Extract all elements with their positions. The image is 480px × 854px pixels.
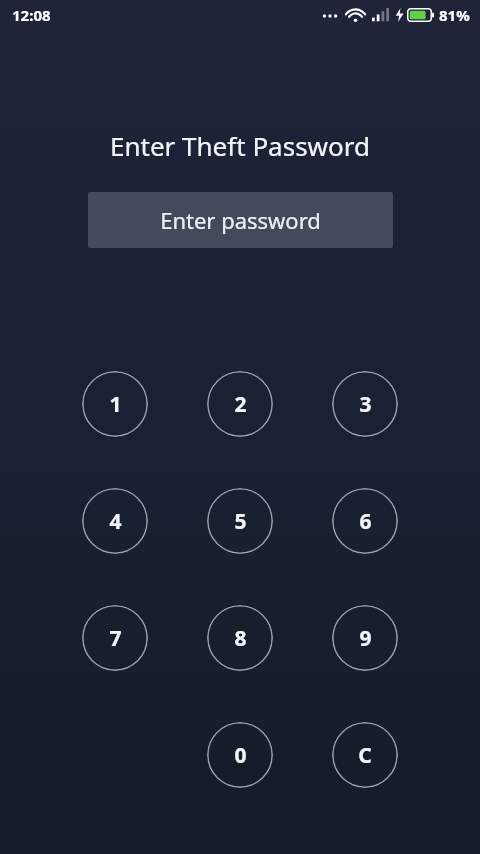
staticText: 4 [109,507,122,536]
staticText: 3 [359,390,372,419]
button[interactable]: Clear [332,722,398,788]
staticText: 0 [234,741,247,770]
staticText: 81% [439,5,470,25]
button[interactable]: Digit 6 [332,488,398,554]
button[interactable]: Digit 8 [207,605,273,671]
button[interactable]: Enter password [88,192,393,248]
button[interactable]: Digit 0 [207,722,273,788]
button[interactable]: Digit 4 [82,488,148,554]
button[interactable]: Digit 9 [332,605,398,671]
staticText: Enter Theft Password [0,128,480,163]
staticText: C [358,741,372,770]
staticText: 9 [359,624,372,653]
button[interactable]: Digit 3 [332,371,398,437]
staticText: 1 [109,390,122,419]
button[interactable]: Digit 2 [207,371,273,437]
staticText: 7 [109,624,122,653]
button[interactable]: Digit 7 [82,605,148,671]
staticText: 2 [234,390,247,419]
staticText: 12:08 [12,5,51,25]
button[interactable]: Digit 1 [82,371,148,437]
button[interactable]: Digit 5 [207,488,273,554]
staticText: 8 [234,624,247,653]
staticText: 5 [234,507,247,536]
staticText: Enter password [160,205,321,235]
staticText: 6 [359,507,372,536]
